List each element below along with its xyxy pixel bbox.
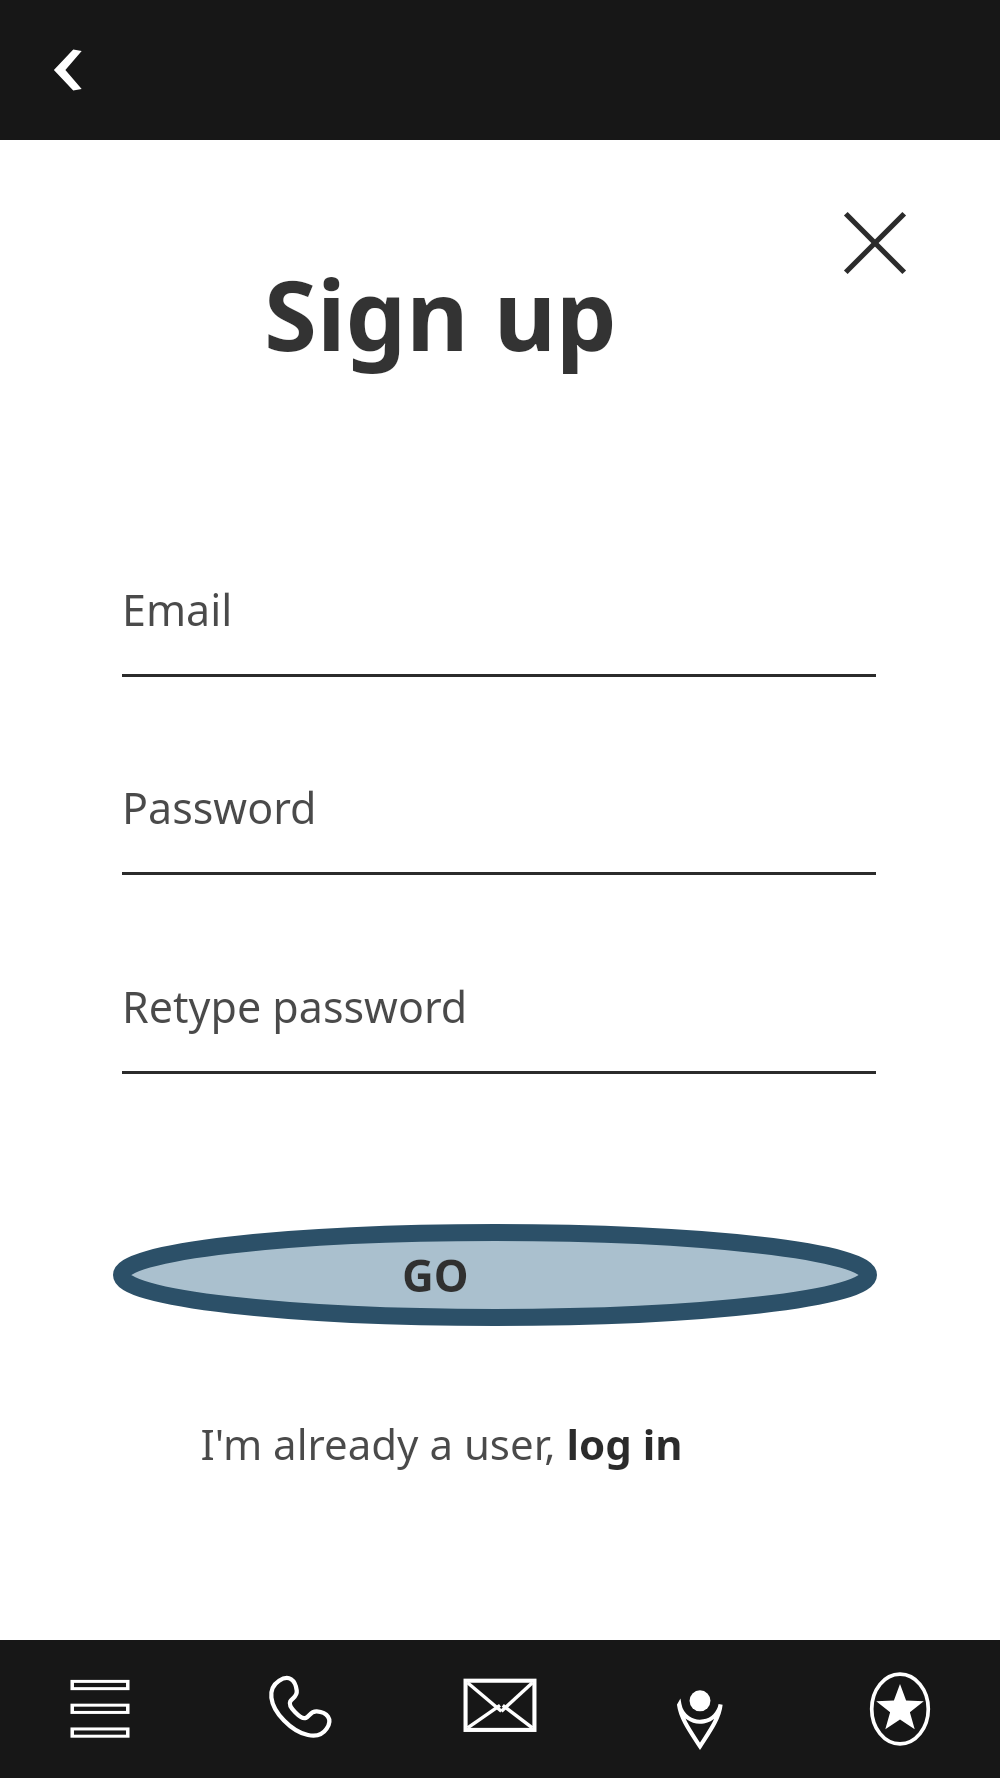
button[interactable]: Location bbox=[600, 1640, 800, 1778]
staticText: GO bbox=[402, 1245, 469, 1305]
button[interactable]: Password bbox=[122, 778, 876, 875]
staticText: Password bbox=[122, 778, 317, 837]
button[interactable]: Mail bbox=[400, 1640, 600, 1778]
button[interactable]: I'm already a user, log in bbox=[200, 1415, 683, 1472]
button[interactable]: Email bbox=[122, 580, 876, 677]
staticText: Email bbox=[122, 580, 233, 639]
button[interactable]: Close bbox=[832, 200, 918, 286]
button[interactable]: Back bbox=[30, 31, 108, 109]
staticText: Sign up bbox=[264, 248, 617, 379]
button[interactable]: GO bbox=[113, 1224, 877, 1326]
button[interactable]: Favorites bbox=[800, 1640, 1000, 1778]
button[interactable]: Menu bbox=[0, 1640, 200, 1778]
staticText: I'm already a user, log in bbox=[200, 1415, 683, 1472]
button[interactable]: Call bbox=[200, 1640, 400, 1778]
staticText: Retype password bbox=[122, 977, 468, 1036]
button[interactable]: Retype password bbox=[122, 977, 876, 1074]
